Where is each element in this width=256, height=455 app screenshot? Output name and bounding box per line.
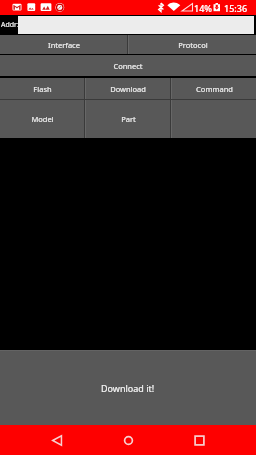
button[interactable]: Download [86,78,170,99]
staticText: Addr: [1,20,19,30]
button[interactable]: Addr: [0,15,18,35]
staticText: Part [121,114,136,124]
button[interactable]: Back [40,425,74,455]
button[interactable]: Flash [0,78,84,99]
staticText: Command [196,84,233,94]
button[interactable]: Part [86,100,170,138]
button[interactable]: Model [0,100,84,138]
staticText: Interface [48,40,80,50]
staticText: Connect [113,61,143,71]
staticText: 15:36 [224,2,248,14]
button[interactable]: Command [172,78,256,99]
button[interactable]: Protocol [129,35,256,54]
staticText: 14% [194,2,212,14]
staticText: Download [110,84,146,94]
button[interactable]: Recent apps [182,425,216,455]
staticText: Download it! [101,382,155,394]
staticText: Model [31,114,54,124]
button[interactable]: Interface [0,35,127,54]
button[interactable]: Home [111,425,145,455]
button[interactable]: Connect [0,55,256,76]
staticText: Flash [33,84,52,94]
staticText: Protocol [178,40,208,50]
button[interactable]: Download it! [0,350,256,425]
